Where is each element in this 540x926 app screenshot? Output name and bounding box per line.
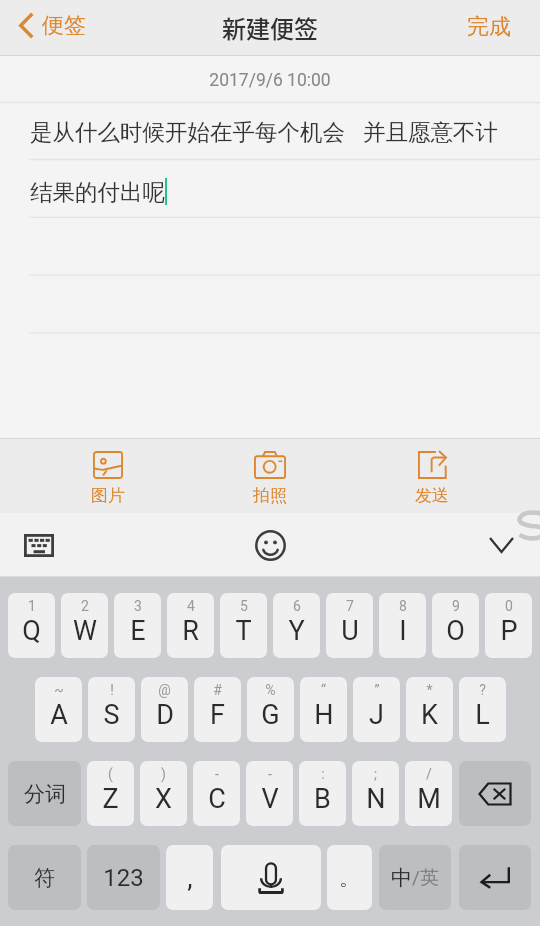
staticText: 5 — [240, 598, 248, 614]
button[interactable]: 符 — [8, 845, 81, 910]
button[interactable]: 3 — [114, 593, 161, 658]
staticText: 并且愿意不计 — [363, 118, 498, 146]
button[interactable]: 1 — [8, 593, 55, 658]
staticText: X — [155, 783, 172, 815]
staticText: H — [314, 699, 334, 731]
staticText: S — [103, 699, 120, 731]
button[interactable] — [221, 845, 321, 910]
staticText: ? — [479, 682, 486, 698]
staticText: G — [261, 699, 280, 731]
staticText: 符 — [34, 865, 55, 891]
button[interactable]: Keyboard settings — [15, 521, 63, 569]
staticText: ) — [161, 766, 166, 782]
staticText: “ — [321, 682, 326, 698]
staticText: 新建便签 — [222, 10, 318, 45]
staticText: 6 — [293, 598, 301, 614]
button[interactable]: 中 — [379, 845, 451, 910]
staticText: 2 — [81, 598, 89, 614]
staticText: 4 — [187, 598, 195, 614]
button[interactable]: Emoji — [246, 521, 294, 569]
staticText: @ — [158, 682, 171, 698]
staticText: 1 — [28, 598, 36, 614]
staticText: N — [366, 783, 386, 815]
button[interactable]: “ — [300, 677, 347, 742]
button[interactable]: 。 — [327, 845, 372, 910]
button[interactable]: 完成 — [438, 0, 540, 56]
staticText: ~ — [54, 682, 64, 698]
button[interactable]: ; — [352, 761, 399, 826]
staticText: D — [156, 699, 174, 731]
button[interactable]: ( — [87, 761, 134, 826]
button[interactable]: ! — [88, 677, 135, 742]
button[interactable] — [459, 845, 531, 910]
button[interactable]: # — [194, 677, 241, 742]
button[interactable]: @ — [141, 677, 188, 742]
staticText: W — [73, 615, 97, 647]
button[interactable]: 发送 — [378, 438, 486, 513]
staticText: 123 — [103, 864, 144, 892]
staticText: ( — [108, 766, 113, 782]
staticText: 3 — [134, 598, 142, 614]
staticText: 便签 — [42, 12, 86, 40]
button[interactable]: 123 — [87, 845, 160, 910]
staticText: K — [421, 699, 438, 731]
button[interactable]: ~ — [35, 677, 82, 742]
staticText: V — [261, 783, 279, 815]
staticText: Q — [22, 615, 41, 647]
button[interactable]: 4 — [167, 593, 214, 658]
staticText: L — [475, 699, 490, 731]
button[interactable]: ) — [140, 761, 187, 826]
button[interactable]: % — [247, 677, 294, 742]
staticText: 图片 — [91, 485, 125, 506]
button[interactable]: 2 — [61, 593, 108, 658]
button[interactable]: , — [166, 845, 213, 910]
staticText: R — [182, 615, 199, 647]
staticText: * — [426, 682, 433, 698]
staticText: Y — [288, 615, 305, 647]
button[interactable]: Hide keyboard — [477, 521, 525, 569]
button[interactable]: - — [246, 761, 293, 826]
staticText: ” — [374, 682, 380, 698]
staticText: 9 — [452, 598, 460, 614]
button[interactable]: * — [406, 677, 453, 742]
button[interactable]: 拍照 — [216, 438, 324, 513]
staticText: 7 — [346, 598, 354, 614]
staticText: T — [235, 615, 252, 647]
button[interactable]: / — [405, 761, 452, 826]
staticText: 8 — [399, 598, 407, 614]
staticText: 是从什么时候开始在乎每个机会 — [30, 118, 345, 146]
staticText: : — [321, 766, 325, 782]
staticText: % — [265, 682, 276, 698]
button[interactable]: 0 — [485, 593, 532, 658]
staticText: M — [417, 783, 441, 815]
button[interactable]: 9 — [432, 593, 479, 658]
staticText: 结果的付出呢 — [30, 178, 165, 206]
button[interactable]: 7 — [326, 593, 373, 658]
staticText: U — [341, 615, 359, 647]
button[interactable]: ? — [459, 677, 506, 742]
button[interactable]: ” — [353, 677, 400, 742]
button[interactable]: : — [299, 761, 346, 826]
staticText: /英 — [412, 866, 439, 890]
staticText: A — [50, 699, 68, 731]
staticText: 分词 — [24, 781, 66, 807]
staticText: C — [208, 783, 226, 815]
staticText: O — [446, 615, 465, 647]
staticText: 拍照 — [253, 485, 287, 506]
button[interactable]: 便签 — [0, 0, 100, 56]
staticText: P — [500, 615, 518, 647]
staticText: - — [215, 766, 219, 782]
staticText: 2017/9/6 10:00 — [209, 70, 331, 91]
button[interactable] — [459, 761, 531, 826]
staticText: / — [426, 766, 432, 782]
button[interactable]: 图片 — [54, 438, 162, 513]
staticText: # — [213, 682, 222, 698]
staticText: F — [210, 699, 225, 731]
button[interactable]: 8 — [379, 593, 426, 658]
button[interactable]: 分词 — [8, 761, 81, 826]
button[interactable]: - — [193, 761, 240, 826]
staticText: ! — [110, 682, 114, 698]
button[interactable]: 6 — [273, 593, 320, 658]
staticText: B — [314, 783, 331, 815]
button[interactable]: 5 — [220, 593, 267, 658]
